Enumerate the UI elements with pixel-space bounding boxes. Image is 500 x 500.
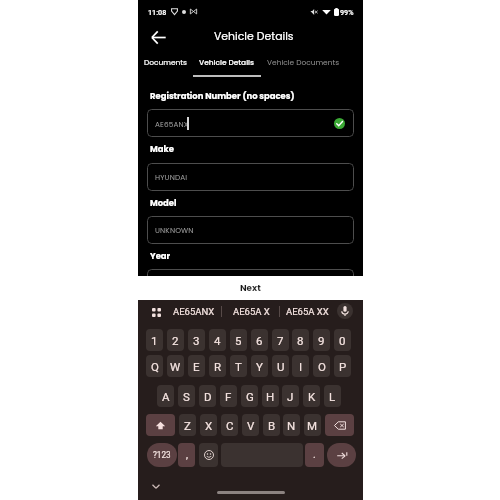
button[interactable]: 9 — [313, 329, 330, 351]
button[interactable]: 1 — [146, 329, 163, 351]
staticText: , — [186, 449, 188, 461]
button[interactable]: L — [324, 385, 341, 407]
staticText: L — [329, 390, 336, 403]
staticText: ?123 — [153, 450, 171, 460]
button[interactable]: H — [262, 385, 279, 407]
button[interactable]: Shift — [146, 414, 175, 436]
button[interactable]: Q — [146, 355, 163, 377]
button[interactable]: 3 — [188, 329, 205, 351]
button[interactable]: 0 — [334, 329, 351, 351]
button[interactable]: Voice input — [337, 303, 353, 319]
button[interactable]: Y — [251, 355, 268, 377]
staticText: 0 — [339, 334, 346, 347]
button[interactable]: S — [178, 385, 195, 407]
button[interactable]: Emoji — [199, 443, 218, 467]
staticText: U — [277, 360, 285, 373]
button[interactable]: UNKNOWN — [147, 216, 354, 244]
staticText: AE65A XX — [286, 306, 329, 317]
button[interactable]: . — [305, 443, 324, 467]
staticText: V — [247, 419, 255, 432]
button[interactable]: W — [167, 355, 184, 377]
staticText: Vehicle Documents — [267, 57, 340, 67]
button[interactable]: A — [157, 385, 174, 407]
button[interactable]: Clipboard — [148, 304, 164, 320]
staticText: Model — [150, 197, 177, 209]
staticText: 9 — [318, 334, 325, 347]
button[interactable]: Hide keyboard — [148, 478, 164, 494]
staticText: N — [287, 419, 296, 432]
staticText: Year — [150, 250, 171, 262]
button[interactable]: V — [242, 414, 259, 436]
staticText: F — [225, 390, 232, 403]
button[interactable]: B — [263, 414, 280, 436]
button[interactable]: Back — [148, 27, 168, 47]
staticText: Vehicle Details — [199, 57, 255, 67]
button[interactable]: C — [221, 414, 238, 436]
staticText: Y — [256, 360, 263, 373]
button[interactable]: 8 — [292, 329, 309, 351]
button[interactable]: AE65A XX — [277, 300, 337, 323]
staticText: X — [205, 419, 213, 432]
staticText: 3 — [193, 334, 200, 347]
staticText: C — [226, 419, 234, 432]
button[interactable]: 2 — [167, 329, 184, 351]
staticText: 7 — [277, 334, 284, 347]
staticText: J — [287, 390, 294, 403]
staticText: 2 — [172, 334, 179, 347]
button[interactable]: Enter — [327, 443, 356, 467]
staticText: Next — [240, 282, 261, 294]
button[interactable]: R — [209, 355, 226, 377]
button[interactable]: G — [241, 385, 258, 407]
button[interactable]: , — [178, 443, 195, 467]
staticText: 11:08 — [148, 8, 167, 16]
button[interactable]: AE65A X — [222, 300, 281, 323]
button[interactable]: 4 — [209, 329, 226, 351]
button[interactable]: Next — [138, 276, 363, 300]
button[interactable]: Vehicle Details — [193, 53, 261, 78]
button[interactable]: K — [303, 385, 320, 407]
button[interactable]: Backspace — [325, 414, 354, 436]
staticText: A — [162, 390, 170, 403]
staticText: HYUNDAI — [155, 172, 188, 182]
button[interactable]: U — [272, 355, 289, 377]
staticText: S — [183, 390, 190, 403]
staticText: 1 — [151, 334, 158, 347]
button[interactable]: X — [200, 414, 217, 436]
staticText: W — [170, 360, 181, 373]
staticText: . — [313, 449, 316, 461]
staticText: T — [235, 360, 242, 373]
button[interactable]: P — [334, 355, 351, 377]
staticText: Documents — [144, 57, 187, 67]
button[interactable]: N — [283, 414, 300, 436]
button[interactable]: I — [292, 355, 309, 377]
button[interactable]: M — [304, 414, 321, 436]
staticText: P — [339, 360, 347, 373]
button[interactable]: AE65ANX — [167, 300, 221, 323]
button[interactable]: HYUNDAI — [147, 163, 354, 191]
button[interactable]: 5 — [230, 329, 247, 351]
button[interactable]: D — [199, 385, 216, 407]
staticText: K — [308, 390, 316, 403]
button[interactable]: Vehicle Documents — [261, 53, 346, 78]
button[interactable]: AE65ANX — [147, 109, 354, 137]
staticText: AE65A X — [233, 306, 270, 317]
button[interactable]: T — [230, 355, 247, 377]
button[interactable]: F — [220, 385, 237, 407]
button[interactable]: J — [282, 385, 299, 407]
button[interactable]: Documents — [138, 53, 193, 78]
staticText: O — [318, 360, 326, 373]
staticText: R — [214, 360, 222, 373]
staticText: UNKNOWN — [155, 225, 194, 235]
staticText: D — [204, 390, 212, 403]
button[interactable]: ?123 — [147, 443, 177, 467]
button[interactable] — [147, 269, 354, 297]
button[interactable]: E — [188, 355, 205, 377]
staticText: G — [246, 390, 254, 403]
button[interactable]: 6 — [251, 329, 268, 351]
staticText: Make — [150, 143, 174, 155]
button[interactable]: Z — [179, 414, 196, 436]
staticText: 8 — [297, 334, 304, 347]
button[interactable]: 7 — [272, 329, 289, 351]
button[interactable]: O — [313, 355, 330, 377]
